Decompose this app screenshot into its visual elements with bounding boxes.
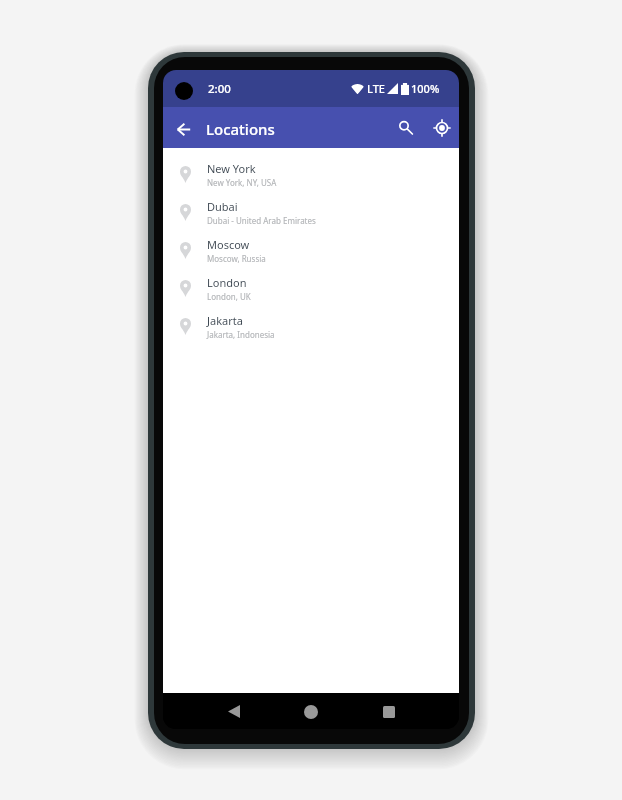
- button[interactable]: Moscow: [163, 231, 459, 269]
- staticText: Jakarta: [207, 313, 243, 328]
- staticText: 100%: [411, 81, 440, 96]
- staticText: New York, NY, USA: [207, 177, 277, 188]
- button[interactable]: My location: [425, 111, 458, 144]
- staticText: Dubai: [207, 199, 238, 214]
- button[interactable]: Home: [294, 695, 327, 728]
- button[interactable]: Back: [217, 695, 250, 728]
- staticText: London: [207, 275, 247, 290]
- staticText: Jakarta, Indonesia: [207, 329, 275, 340]
- button[interactable]: Jakarta: [163, 307, 459, 345]
- staticText: Moscow, Russia: [207, 253, 266, 264]
- button[interactable]: Dubai: [163, 193, 459, 231]
- staticText: LTE: [367, 81, 385, 96]
- staticText: 2:00: [208, 81, 231, 97]
- staticText: Moscow: [207, 237, 250, 252]
- button[interactable]: London: [163, 269, 459, 307]
- button[interactable]: Search: [389, 111, 422, 144]
- staticText: London, UK: [207, 291, 251, 302]
- button[interactable]: Back: [167, 113, 200, 146]
- button[interactable]: Recents: [372, 695, 405, 728]
- button[interactable]: New York: [163, 155, 459, 193]
- staticText: Dubai - United Arab Emirates: [207, 215, 316, 226]
- staticText: Locations: [206, 119, 275, 139]
- staticText: New York: [207, 161, 256, 176]
